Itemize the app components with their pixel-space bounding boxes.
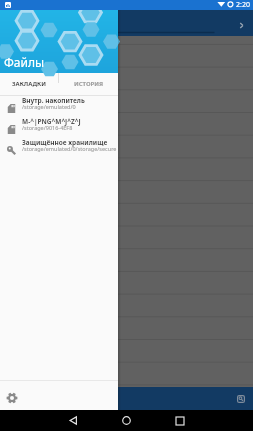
- button[interactable]: ИСТОРИЯ: [59, 73, 118, 95]
- button[interactable]: Recents: [169, 410, 190, 431]
- staticText: /storage/9016-4EF8: [22, 124, 73, 131]
- button[interactable]: Expand: [234, 18, 248, 32]
- button[interactable]: Внутр. накопитель: [0, 98, 118, 119]
- staticText: Защищённое хранилище: [22, 138, 108, 147]
- staticText: /storage/emulated/0/storage/secure: [22, 145, 117, 152]
- button[interactable]: Search: [234, 392, 247, 405]
- staticText: M-^|PNG^M^J^Z^J: [22, 117, 81, 126]
- button[interactable]: Back: [63, 410, 84, 431]
- button[interactable]: Settings: [0, 381, 118, 410]
- staticText: Внутр. накопитель: [22, 96, 85, 105]
- staticText: /storage/emulated/0: [22, 103, 76, 110]
- staticText: ЗАКЛАДКИ: [12, 80, 46, 88]
- staticText: 2:20: [236, 0, 250, 10]
- button[interactable]: Защищённое хранилище: [0, 140, 118, 161]
- button[interactable]: M-^|PNG^M^J^Z^J: [0, 119, 118, 140]
- button[interactable]: ЗАКЛАДКИ: [0, 73, 58, 95]
- staticText: ИСТОРИЯ: [74, 80, 104, 88]
- staticText: Файлы: [4, 54, 45, 70]
- button[interactable]: Home: [116, 410, 137, 431]
